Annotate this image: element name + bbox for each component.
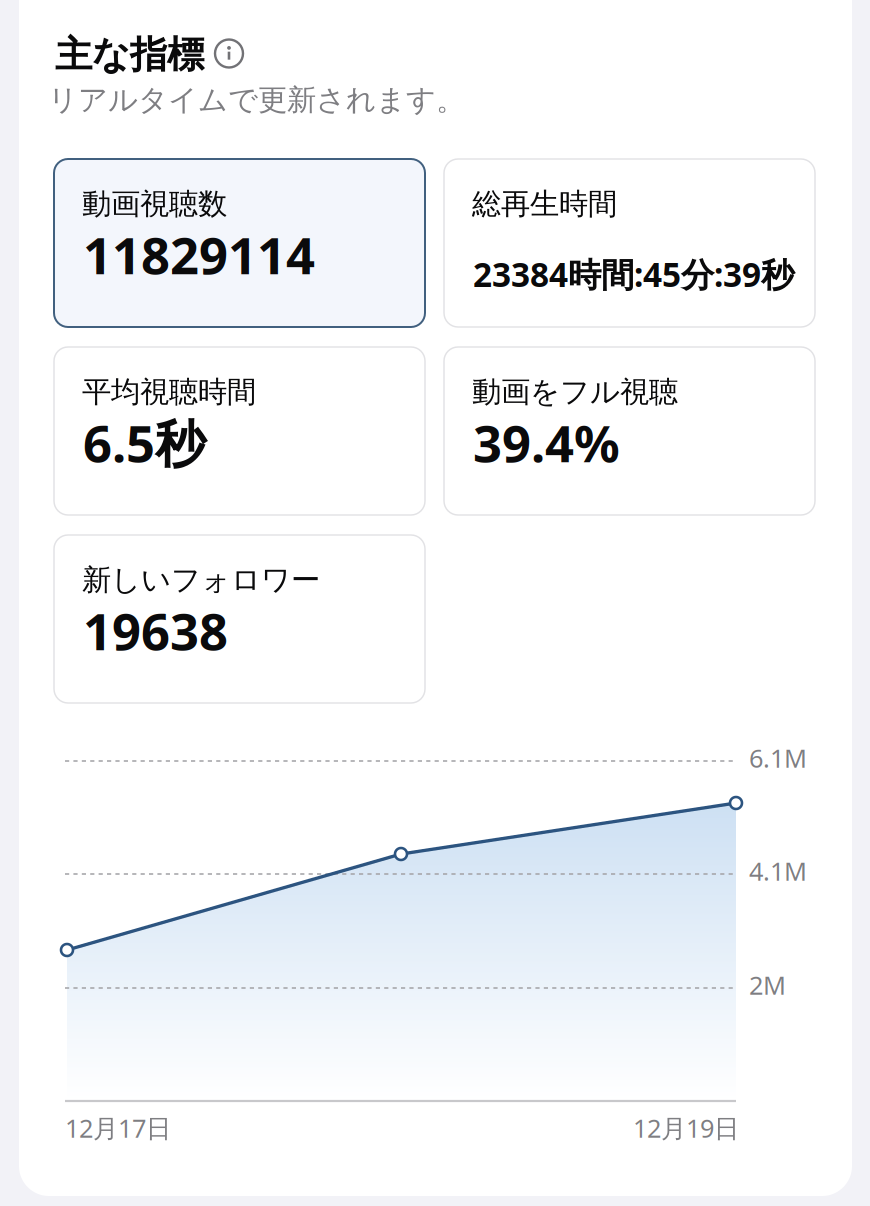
staticText: 平均視聴時間	[82, 374, 256, 410]
button[interactable]: 指標の説明	[215, 39, 243, 67]
staticText: 動画をフル視聴	[472, 374, 678, 410]
button[interactable]: 動画をフル視聴	[444, 347, 815, 515]
staticText: 12月17日	[65, 1111, 171, 1145]
staticText: 23384時間:45分:39秒	[473, 252, 794, 296]
staticText: 動画視聴数	[82, 186, 227, 222]
staticText: 主な指標	[55, 32, 204, 78]
staticText: 19638	[83, 597, 228, 664]
button[interactable]: 総再生時間	[444, 159, 815, 327]
staticText: 6.5秒	[83, 409, 206, 476]
button[interactable]: 新しいフォロワー	[54, 535, 425, 703]
staticText: 39.4%	[473, 409, 620, 476]
staticText: 4.1M	[749, 854, 807, 888]
button[interactable]: 平均視聴時間	[54, 347, 425, 515]
staticText: 2M	[749, 968, 786, 1002]
button[interactable]: 動画視聴数	[54, 159, 425, 327]
staticText: 11829114	[83, 221, 315, 288]
staticText: 12月19日	[633, 1111, 739, 1145]
staticText: リアルタイムで更新されます。	[48, 82, 465, 118]
staticText: 新しいフォロワー	[82, 562, 320, 598]
staticText: 6.1M	[749, 741, 807, 775]
staticText: 総再生時間	[472, 186, 617, 222]
